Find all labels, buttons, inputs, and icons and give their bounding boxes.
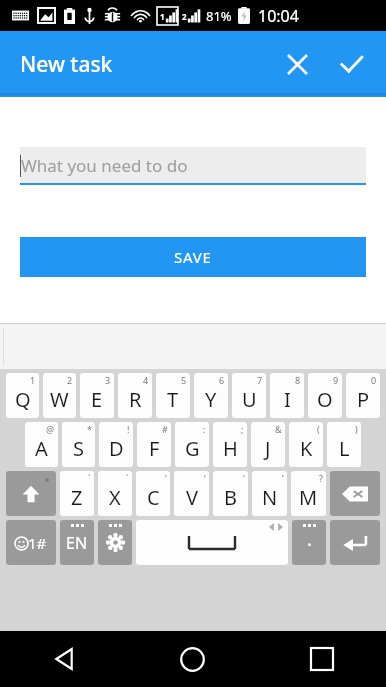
button[interactable]: 0: [346, 373, 380, 418]
staticText: B: [224, 484, 237, 511]
staticText: T: [167, 386, 179, 413]
staticText: ): [355, 423, 358, 435]
staticText: ;: [241, 423, 244, 435]
staticText: ´: [88, 472, 91, 484]
button[interactable]: &: [251, 422, 285, 467]
button[interactable]: :: [175, 422, 209, 467]
button[interactable]: ‘: [174, 471, 209, 516]
button[interactable]: 5: [156, 373, 190, 418]
staticText: 1#: [28, 533, 47, 553]
staticText: K: [300, 435, 313, 462]
staticText: @: [46, 423, 55, 435]
staticText: ‘: [204, 472, 206, 484]
button[interactable]: Home: [128, 631, 257, 687]
staticText: 7: [257, 374, 263, 386]
button[interactable]: *: [62, 422, 95, 467]
staticText: 0: [371, 374, 377, 386]
staticText: N: [262, 484, 278, 511]
staticText: 1: [30, 374, 36, 386]
button[interactable]: Shift: [6, 471, 56, 516]
staticText: EN: [66, 532, 88, 554]
staticText: 10:04: [258, 5, 299, 27]
button[interactable]: #: [137, 422, 171, 467]
button[interactable]: ´: [60, 471, 94, 516]
staticText: ´: [126, 472, 129, 484]
button[interactable]: 2: [43, 373, 76, 418]
button[interactable]: Period: [292, 520, 326, 565]
button[interactable]: @: [25, 422, 58, 467]
button[interactable]: ’: [252, 471, 287, 516]
button[interactable]: Enter: [330, 520, 380, 565]
staticText: 5: [181, 374, 187, 386]
staticText: C: [147, 484, 160, 511]
button[interactable]: !: [99, 422, 133, 467]
staticText: 3: [105, 374, 111, 386]
staticText: ‘: [243, 472, 245, 484]
button[interactable]: ): [327, 422, 361, 467]
button[interactable]: What you need to do: [20, 147, 366, 183]
staticText: What you need to do: [21, 154, 188, 177]
button[interactable]: ‘: [213, 471, 248, 516]
staticText: 8: [295, 374, 301, 386]
staticText: Y: [205, 386, 217, 413]
staticText: I: [284, 386, 291, 413]
button[interactable]: ´: [98, 471, 132, 516]
staticText: :: [203, 423, 206, 435]
button[interactable]: Back: [0, 631, 128, 687]
staticText: 6: [219, 374, 225, 386]
button[interactable]: 8: [270, 373, 304, 418]
staticText: 4: [143, 374, 149, 386]
button[interactable]: 6: [194, 373, 228, 418]
staticText: (: [317, 423, 320, 435]
button[interactable]: 4: [118, 373, 152, 418]
staticText: F: [149, 435, 160, 462]
staticText: New task: [20, 50, 113, 79]
staticText: U: [242, 386, 257, 413]
button[interactable]: SAVE: [20, 237, 366, 277]
button[interactable]: 3: [80, 373, 114, 418]
staticText: V: [186, 484, 198, 511]
button[interactable]: Keyboard settings: [98, 520, 132, 565]
button[interactable]: 1: [6, 373, 39, 418]
staticText: 2: [182, 11, 187, 22]
staticText: O: [317, 386, 333, 413]
staticText: X: [109, 484, 121, 511]
staticText: J: [265, 435, 271, 462]
staticText: ’: [282, 472, 284, 484]
staticText: 9: [333, 374, 339, 386]
button[interactable]: Recent apps: [257, 631, 386, 687]
staticText: ‘: [165, 472, 167, 484]
staticText: Q: [15, 386, 31, 413]
staticText: D: [109, 435, 124, 462]
button[interactable]: Space: [136, 520, 288, 565]
button[interactable]: 9: [308, 373, 342, 418]
button[interactable]: Language EN: [60, 520, 94, 565]
staticText: A: [35, 435, 48, 462]
staticText: E: [91, 386, 103, 413]
staticText: W: [50, 386, 69, 413]
staticText: L: [339, 435, 350, 462]
button[interactable]: ;: [213, 422, 247, 467]
button[interactable]: Save task: [324, 37, 378, 91]
staticText: #: [162, 423, 168, 435]
staticText: G: [185, 435, 200, 462]
button[interactable]: Backspace: [330, 471, 380, 516]
button[interactable]: Discard: [270, 37, 324, 91]
staticText: ?: [319, 472, 323, 484]
staticText: 2: [67, 374, 73, 386]
button[interactable]: 7: [232, 373, 266, 418]
staticText: !: [127, 423, 130, 435]
staticText: S: [73, 435, 84, 462]
staticText: &: [275, 423, 282, 435]
staticText: H: [223, 435, 238, 462]
staticText: 81%: [206, 7, 232, 25]
staticText: R: [129, 386, 142, 413]
staticText: .: [307, 527, 312, 552]
button[interactable]: ‘: [136, 471, 170, 516]
button[interactable]: (: [289, 422, 323, 467]
staticText: M: [299, 484, 318, 511]
staticText: 1: [160, 11, 165, 22]
button[interactable]: Symbols and emoji: [6, 520, 56, 565]
staticText: P: [357, 386, 370, 413]
button[interactable]: ?: [291, 471, 326, 516]
